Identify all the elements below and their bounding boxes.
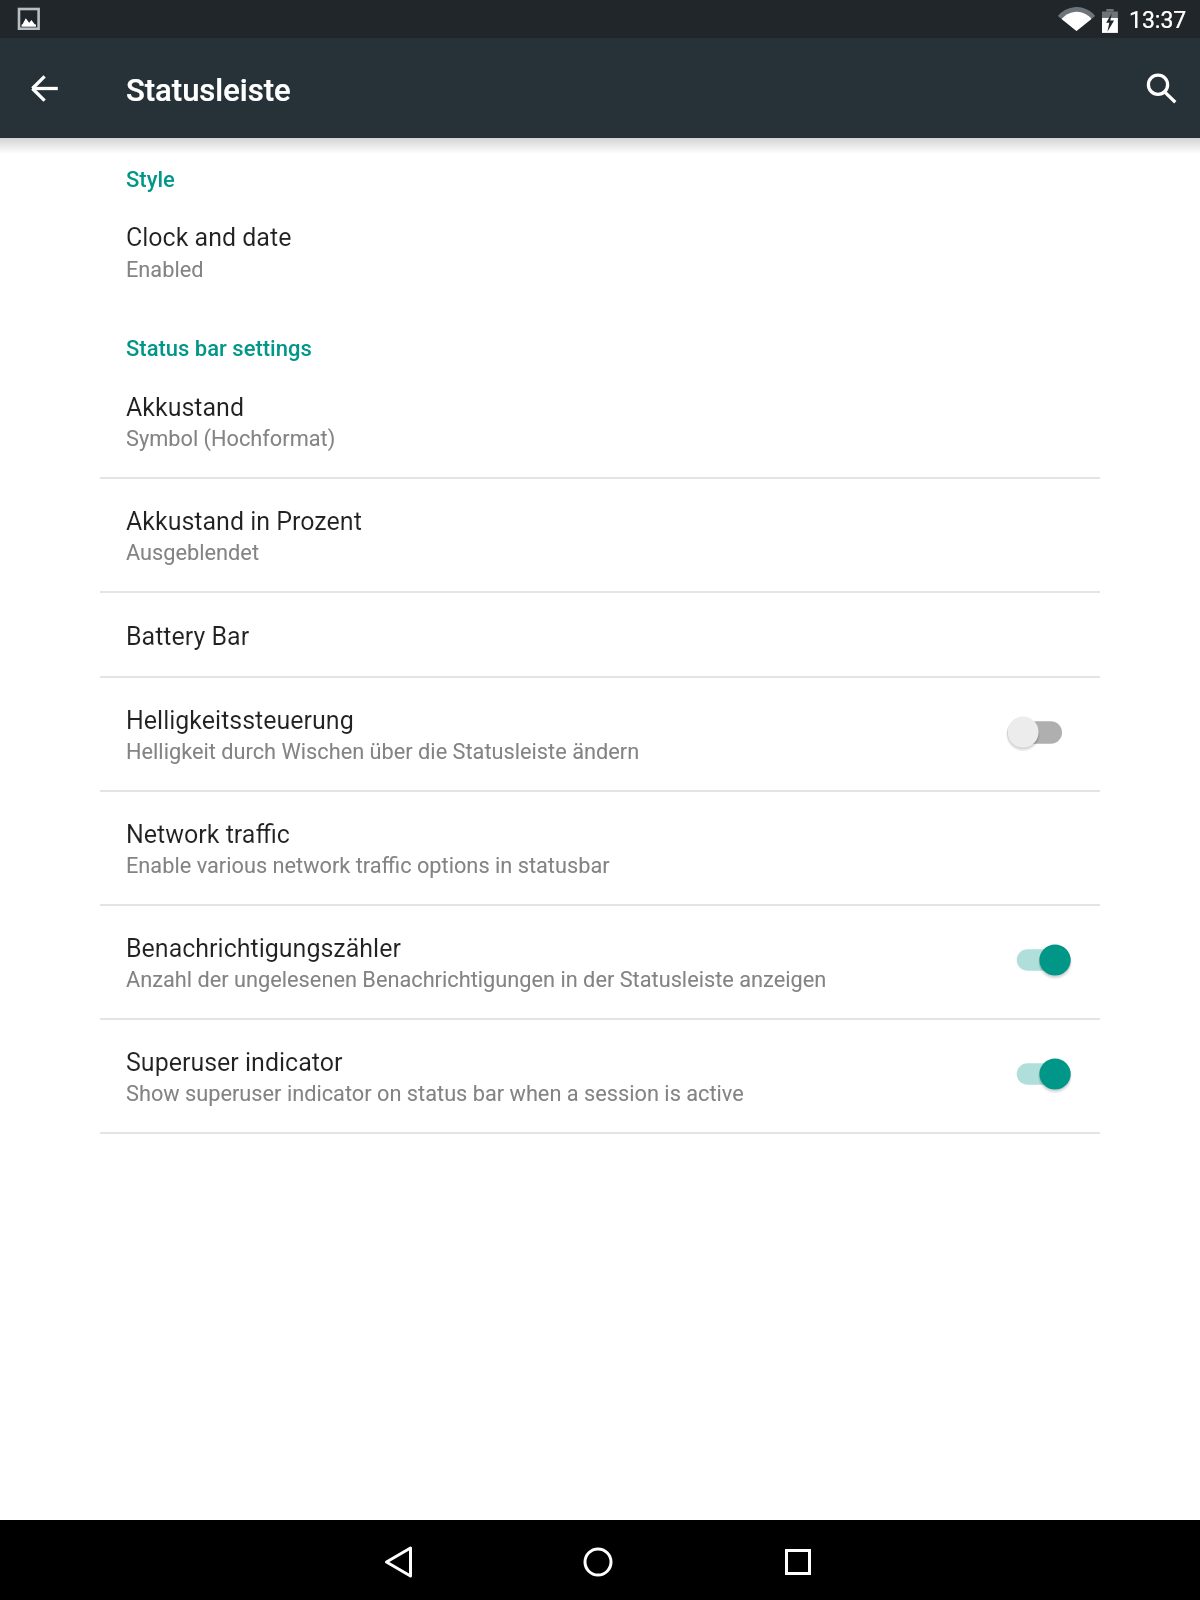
staticText: Anzahl der ungelesenen Benachrichtigunge…	[126, 967, 827, 992]
staticText: Statusleiste	[126, 72, 291, 108]
button[interactable]: Benachrichtigungszähler	[0, 904, 1200, 1018]
staticText: 13:37	[1129, 7, 1187, 34]
button[interactable]: Switch on	[995, 937, 1081, 983]
staticText: Status bar settings	[126, 336, 312, 362]
staticText: Helligkeit durch Wischen über die Status…	[126, 739, 640, 764]
button[interactable]: Recent apps	[768, 1532, 828, 1592]
staticText: Akkustand in Prozent	[126, 507, 362, 536]
staticText: Show superuser indicator on status bar w…	[126, 1081, 744, 1106]
button[interactable]: Back	[369, 1532, 429, 1592]
button[interactable]: Network traffic	[0, 790, 1200, 904]
staticText: Enabled	[126, 257, 204, 282]
button[interactable]: Home	[568, 1532, 628, 1592]
button[interactable]: Superuser indicator	[0, 1018, 1200, 1132]
button[interactable]: Akkustand	[0, 363, 1200, 477]
button[interactable]: Helligkeitssteuerung	[0, 676, 1200, 790]
button[interactable]: Switch on	[995, 1051, 1081, 1097]
button[interactable]: Clock and date	[0, 196, 1200, 310]
button[interactable]: Back	[19, 62, 71, 114]
staticText: Symbol (Hochformat)	[126, 426, 336, 451]
staticText: Battery Bar	[126, 622, 250, 651]
staticText: Helligkeitssteuerung	[126, 706, 354, 735]
staticText: Network traffic	[126, 820, 290, 849]
button[interactable]: Akkustand in Prozent	[0, 477, 1200, 591]
button[interactable]: Switch off	[995, 709, 1081, 755]
button[interactable]: Battery Bar	[0, 562, 1200, 676]
staticText: Ausgeblendet	[126, 540, 259, 565]
staticText: Superuser indicator	[126, 1048, 343, 1077]
staticText: Akkustand	[126, 393, 245, 422]
staticText: Enable various network traffic options i…	[126, 853, 610, 878]
button[interactable]: Search	[1136, 62, 1188, 114]
staticText: Benachrichtigungszähler	[126, 934, 401, 963]
staticText: Style	[126, 167, 175, 193]
staticText: Clock and date	[126, 223, 292, 252]
